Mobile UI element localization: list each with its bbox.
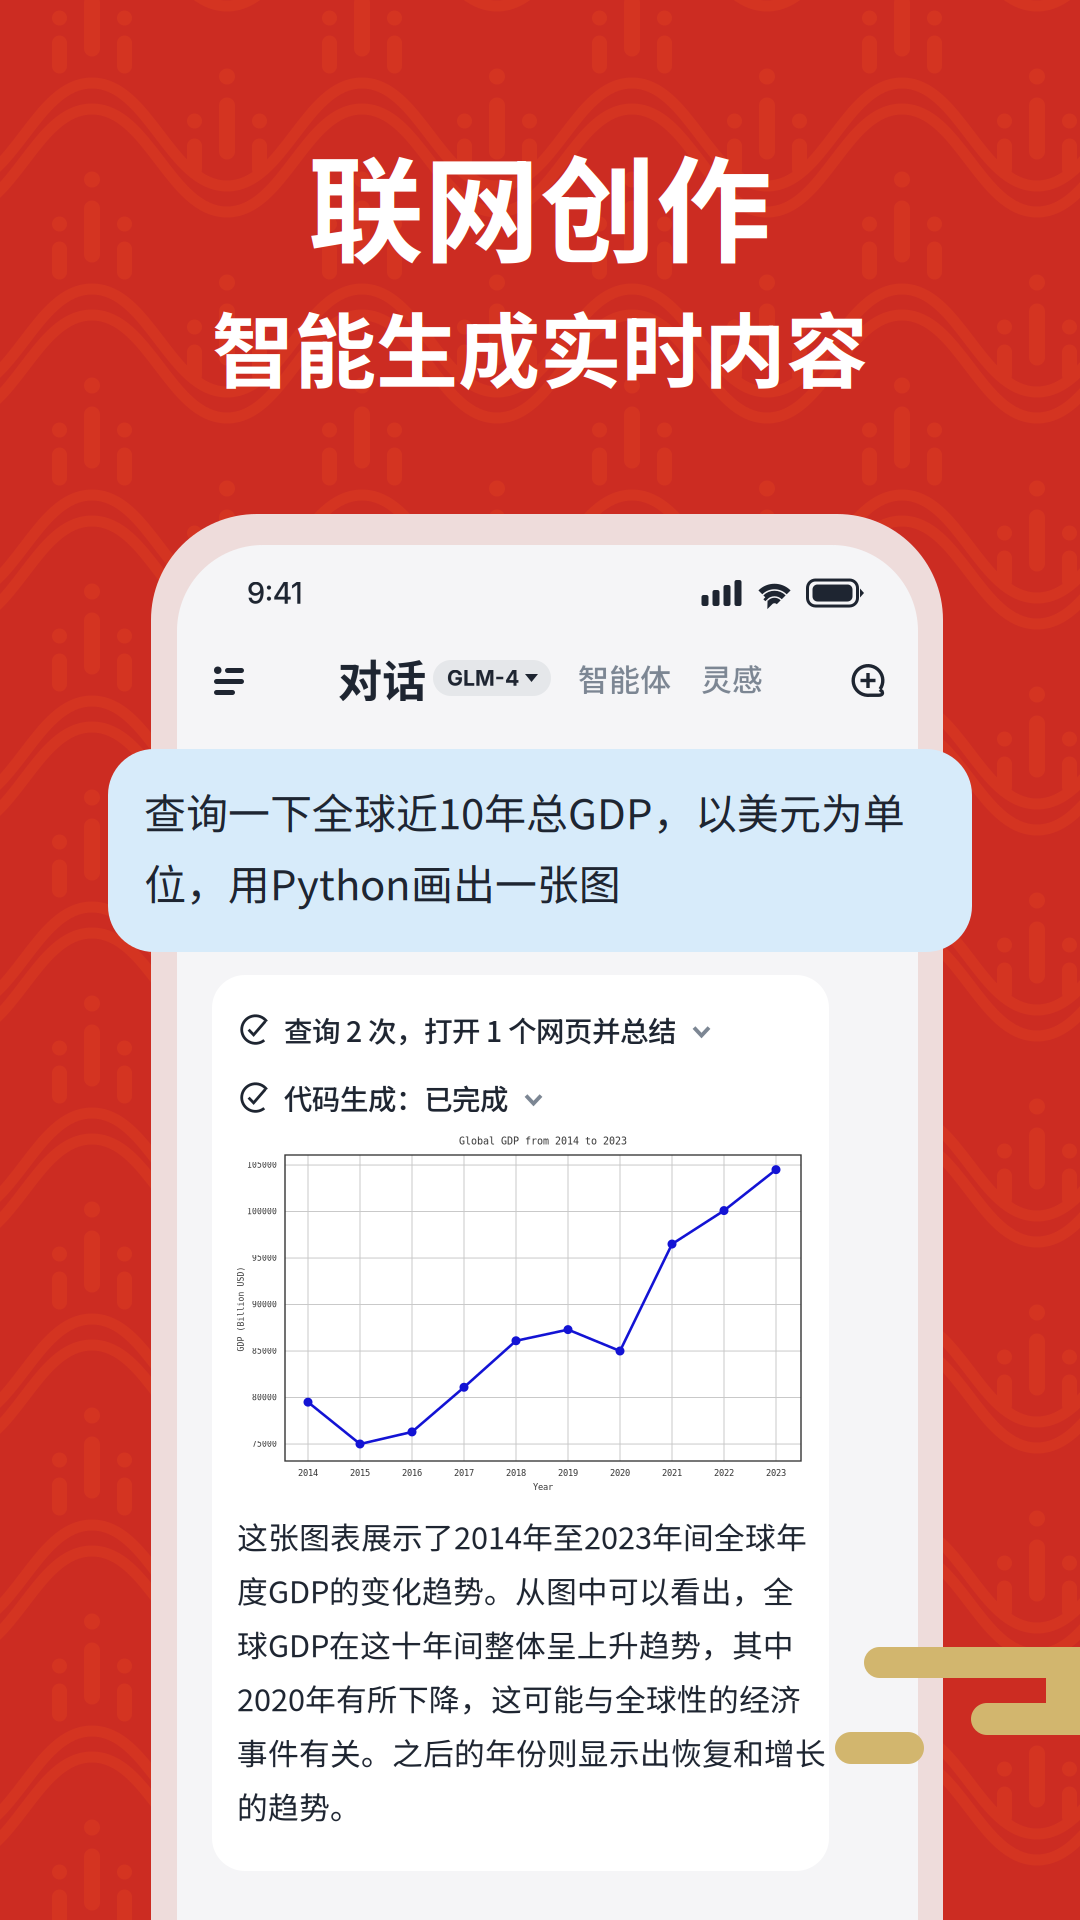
staticText: 2015 [350,1468,370,1478]
staticText: 度GDP的变化趋势。从图中可以看出，全 [237,1568,794,1612]
staticText: 智能体 [578,656,671,700]
staticText: GDP (Billion USD) [198,1304,283,1314]
staticText: 灵感 [701,656,763,700]
staticText: 查询 2 次，打开 1 个网页并总结 [284,1009,676,1050]
button[interactable]: 查询 2 次，打开 1 个网页并总结 [241,1009,711,1050]
staticText: 75000 [252,1439,277,1449]
staticText: 联网创作 [308,119,772,287]
staticText: 2016 [402,1468,422,1478]
staticText: 智能生成实时内容 [212,287,868,405]
staticText: 85000 [252,1346,277,1356]
staticText: 这张图表展示了2014年至2023年间全球年 [237,1514,807,1558]
staticText: 代码生成：已完成 [284,1077,508,1118]
staticText: 事件有关。之后的年份则显示出恢复和增长 [237,1730,826,1774]
staticText: 80000 [252,1393,277,1402]
staticText: GLM-4 [447,665,519,691]
staticText: 查询一下全球近10年总GDP，以美元为单 [144,781,905,841]
staticText: Year [533,1482,553,1492]
staticText: 2018 [506,1468,526,1478]
button[interactable]: 新建对话 [848,660,884,696]
staticText: 90000 [252,1300,277,1309]
button[interactable]: 智能体 [578,656,671,700]
staticText: 的趋势。 [237,1784,361,1828]
staticText: 2021 [662,1468,682,1478]
staticText: 2020 [610,1468,630,1478]
staticText: Global GDP from 2014 to 2023 [459,1135,627,1147]
staticText: 2020年有所下降，这可能与全球性的经济 [237,1676,801,1720]
staticText: 100000 [247,1207,277,1216]
staticText: 95000 [252,1253,277,1263]
staticText: 9:41 [247,575,303,611]
button[interactable]: 对话 [338,646,551,710]
staticText: 2014 [298,1468,318,1478]
staticText: 2022 [714,1468,734,1478]
staticText: 对话 [338,646,426,710]
staticText: 球GDP在这十年间整体呈上升趋势，其中 [237,1622,794,1666]
button[interactable]: 菜单 [214,663,244,692]
button[interactable]: 灵感 [701,656,763,700]
button[interactable]: 代码生成：已完成 [241,1077,543,1118]
staticText: 2017 [454,1468,474,1478]
staticText: 105000 [247,1160,277,1170]
staticText: 位，用Python画出一张图 [144,852,621,912]
staticText: 2023 [766,1468,786,1478]
staticText: 2019 [558,1468,578,1478]
